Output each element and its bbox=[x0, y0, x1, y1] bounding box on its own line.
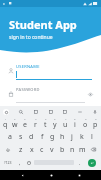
button[interactable]: v bbox=[47, 143, 57, 156]
staticText: d bbox=[29, 132, 34, 142]
button[interactable]: 1 bbox=[1, 117, 10, 130]
button[interactable]: 7 bbox=[60, 117, 70, 130]
button[interactable]: d bbox=[26, 130, 37, 143]
button[interactable]: l bbox=[87, 130, 97, 143]
staticText: b bbox=[60, 145, 65, 155]
staticText: PASSWORD bbox=[16, 87, 40, 92]
staticText: s bbox=[19, 132, 23, 142]
staticText: c bbox=[40, 145, 44, 155]
button[interactable]: More options bbox=[77, 109, 83, 115]
staticText: n bbox=[70, 145, 75, 155]
button[interactable]: h bbox=[57, 130, 67, 143]
staticText: 2 bbox=[14, 117, 16, 120]
staticText: a bbox=[8, 132, 12, 142]
button[interactable]: Search bbox=[18, 109, 24, 115]
staticText: 6 bbox=[54, 117, 56, 120]
staticText: 9 bbox=[85, 117, 87, 120]
staticText: Student App bbox=[9, 17, 77, 32]
staticText: 3 bbox=[24, 117, 26, 120]
staticText: q bbox=[3, 120, 8, 130]
staticText: h bbox=[60, 132, 65, 142]
button[interactable]: Google bbox=[3, 109, 9, 115]
staticText: , bbox=[19, 159, 21, 166]
button[interactable]: 5 bbox=[40, 117, 50, 130]
button[interactable]: . bbox=[75, 156, 84, 169]
button[interactable]: 2 bbox=[10, 117, 20, 130]
button[interactable]: f bbox=[37, 130, 47, 143]
button[interactable]: 8 bbox=[70, 117, 80, 130]
button[interactable]: n bbox=[67, 143, 77, 156]
staticText: 0 bbox=[95, 117, 97, 120]
button[interactable]: 4 bbox=[30, 117, 40, 130]
button[interactable]: Recents bbox=[72, 170, 86, 180]
button[interactable]: b bbox=[57, 143, 67, 156]
staticText: . bbox=[79, 159, 81, 166]
button[interactable]: 3 bbox=[20, 117, 30, 130]
button[interactable]: Back bbox=[15, 170, 29, 180]
button[interactable]: a bbox=[4, 130, 15, 143]
staticText: e bbox=[23, 120, 27, 130]
button[interactable]: Home bbox=[44, 170, 58, 180]
staticText: x bbox=[30, 145, 34, 155]
staticText: v bbox=[50, 145, 54, 155]
staticText: r bbox=[34, 120, 37, 130]
button[interactable]: k bbox=[77, 130, 87, 143]
button[interactable]: Enter bbox=[84, 156, 100, 169]
button[interactable]: GIF bbox=[48, 109, 54, 115]
staticText: sign in to continue bbox=[9, 34, 53, 41]
staticText: j bbox=[71, 132, 73, 142]
staticText: 7 bbox=[65, 117, 67, 120]
button[interactable]: Backspace bbox=[87, 143, 100, 156]
button[interactable]: s bbox=[15, 130, 26, 143]
staticText: 1 bbox=[5, 117, 7, 120]
staticText: l bbox=[91, 132, 93, 142]
staticText: f bbox=[41, 132, 44, 142]
staticText: m bbox=[79, 145, 86, 155]
button[interactable]: PASSWORD bbox=[5, 85, 96, 103]
button[interactable]: 9 bbox=[80, 117, 90, 130]
button[interactable]: USERNAME bbox=[5, 62, 96, 80]
button[interactable]: ?123 bbox=[1, 156, 15, 169]
button[interactable]: 6 bbox=[50, 117, 60, 130]
staticText: 4 bbox=[35, 117, 37, 120]
button[interactable]: Clipboard bbox=[62, 109, 68, 115]
button[interactable]: j bbox=[67, 130, 77, 143]
staticText: k bbox=[80, 132, 84, 142]
button[interactable]: z bbox=[15, 143, 26, 156]
button[interactable]: m bbox=[77, 143, 87, 156]
button[interactable]: Stickers bbox=[33, 109, 39, 115]
staticText: u bbox=[63, 120, 68, 130]
staticText: g bbox=[50, 132, 55, 142]
staticText: 5 bbox=[45, 117, 47, 120]
staticText: USERNAME bbox=[16, 64, 40, 69]
staticText: o bbox=[83, 120, 88, 130]
button[interactable]: x bbox=[26, 143, 37, 156]
button[interactable]: Voice input bbox=[92, 109, 98, 115]
staticText: p bbox=[93, 120, 98, 130]
staticText: 8 bbox=[74, 117, 76, 120]
button[interactable]: g bbox=[47, 130, 57, 143]
button[interactable]: Shift bbox=[1, 143, 15, 156]
staticText: z bbox=[19, 145, 23, 155]
staticText: t bbox=[44, 120, 47, 130]
staticText: y bbox=[53, 120, 57, 130]
button[interactable]: , bbox=[15, 156, 24, 169]
staticText: w bbox=[12, 120, 18, 130]
button[interactable]: c bbox=[37, 143, 47, 156]
button[interactable]: 0 bbox=[90, 117, 100, 130]
staticText: ?123 bbox=[4, 160, 12, 165]
button[interactable]: Show password bbox=[85, 85, 96, 103]
button[interactable]: Emoji bbox=[24, 156, 33, 169]
staticText: i bbox=[74, 120, 76, 130]
